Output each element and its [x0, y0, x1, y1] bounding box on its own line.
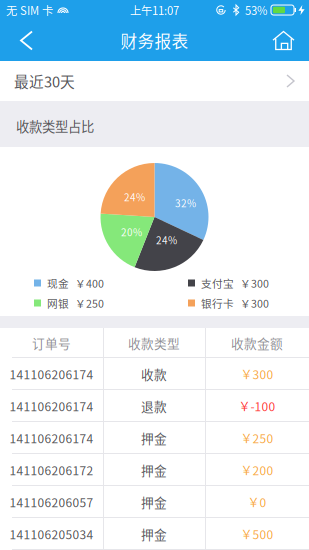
staticText: 收款金额 [231, 334, 283, 352]
staticText: 支付宝 [201, 275, 234, 291]
button[interactable]: 141106206174 [0, 390, 309, 422]
staticText: 押金 [141, 461, 167, 479]
staticText: 银行卡 [201, 295, 234, 311]
staticText: ￥-100 [238, 397, 275, 415]
staticText: 最近30天 [14, 70, 75, 92]
staticText: ￥500 [240, 525, 273, 543]
button[interactable]: 141106206174 [0, 422, 309, 454]
staticText: 财务报表 [120, 28, 188, 52]
staticText: 订单号 [32, 334, 71, 352]
staticText: 押金 [141, 525, 167, 543]
staticText: 24% [156, 233, 177, 247]
staticText: 网银 [47, 295, 69, 311]
staticText: 141106206057 [9, 493, 93, 511]
staticText: 收款类型占比 [16, 116, 94, 136]
button[interactable]: 141106206172 [0, 454, 309, 486]
staticText: 141106206174 [9, 365, 93, 383]
staticText: 押金 [141, 493, 167, 511]
staticText: ￥400 [75, 275, 104, 291]
staticText: ￥250 [240, 429, 273, 447]
staticText: 141106205034 [9, 525, 93, 543]
staticText: 上午11:07 [130, 2, 179, 18]
button[interactable]: 返回 [0, 20, 46, 61]
staticText: 押金 [141, 429, 167, 447]
button[interactable]: 最近30天 [0, 61, 309, 101]
staticText: 退款 [141, 397, 167, 415]
staticText: ￥300 [240, 275, 269, 291]
button[interactable]: 141106206057 [0, 486, 309, 518]
staticText: 无 SIM 卡 [6, 2, 53, 18]
staticText: ￥300 [240, 365, 273, 383]
staticText: 141106206174 [9, 397, 93, 415]
staticText: 53% [245, 2, 267, 18]
staticText: 20% [121, 225, 142, 239]
button[interactable]: 141106206174 [0, 358, 309, 390]
staticText: ￥0 [247, 493, 266, 511]
staticText: 141106206174 [9, 429, 93, 447]
staticText: ￥300 [240, 295, 269, 311]
button[interactable]: 141106205034 [0, 518, 309, 550]
staticText: 141106206172 [9, 461, 93, 479]
staticText: 24% [124, 190, 145, 204]
staticText: 现金 [47, 275, 69, 291]
staticText: ￥250 [75, 295, 104, 311]
button[interactable]: 首页 [256, 20, 309, 61]
staticText: 32% [175, 196, 196, 210]
staticText: ￥200 [240, 461, 273, 479]
staticText: 收款类型 [128, 334, 180, 352]
staticText: 收款 [141, 365, 167, 383]
